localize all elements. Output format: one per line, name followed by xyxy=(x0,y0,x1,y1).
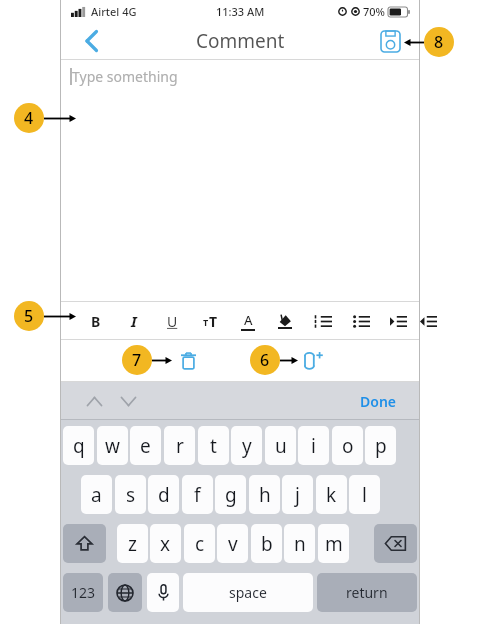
button[interactable]: Text size xyxy=(195,306,225,336)
button[interactable]: Attach file xyxy=(298,345,330,377)
staticText: n xyxy=(294,531,306,557)
staticText: g xyxy=(225,482,237,508)
staticText: q xyxy=(73,433,85,459)
staticText: j xyxy=(295,482,300,508)
button[interactable]: v xyxy=(217,524,248,563)
button[interactable]: b xyxy=(251,524,282,563)
button[interactable]: c xyxy=(184,524,215,563)
staticText: U xyxy=(167,312,178,331)
staticText: space xyxy=(229,583,267,602)
staticText: u xyxy=(275,433,287,459)
button[interactable]: y xyxy=(231,426,262,465)
button[interactable]: e xyxy=(130,426,161,465)
button[interactable]: Type something xyxy=(61,60,419,302)
button[interactable]: Numbers xyxy=(63,573,103,612)
staticText: y xyxy=(242,433,252,459)
staticText: v xyxy=(228,531,238,557)
button[interactable]: Back xyxy=(75,24,109,58)
staticText: r xyxy=(176,433,184,459)
staticText: o xyxy=(342,433,354,459)
staticText: h xyxy=(259,482,271,508)
button[interactable]: Backspace xyxy=(374,524,417,563)
button[interactable]: Delete xyxy=(172,345,204,377)
staticText: w xyxy=(105,433,120,459)
button[interactable]: Shift xyxy=(63,524,106,563)
button[interactable]: Text color xyxy=(233,306,263,336)
staticText: I xyxy=(131,311,137,331)
staticText: Done xyxy=(360,392,397,411)
staticText: T xyxy=(209,312,218,331)
button[interactable]: i xyxy=(298,426,329,465)
button[interactable]: l xyxy=(349,475,380,514)
button[interactable]: Previous field xyxy=(79,386,109,416)
staticText: Airtel 4G xyxy=(91,4,137,19)
button[interactable]: space xyxy=(183,573,313,612)
button[interactable]: t xyxy=(198,426,229,465)
button[interactable]: x xyxy=(150,524,181,563)
button[interactable]: g xyxy=(215,475,246,514)
staticText: 6 xyxy=(260,349,270,371)
button[interactable]: Decrease indent xyxy=(413,306,443,336)
button[interactable]: B xyxy=(81,306,111,336)
staticText: Comment xyxy=(196,28,285,54)
staticText: A xyxy=(244,311,253,329)
staticText: p xyxy=(375,433,387,459)
button[interactable]: w xyxy=(97,426,128,465)
staticText: 5 xyxy=(24,305,34,327)
staticText: Type something xyxy=(72,67,178,86)
button[interactable]: m xyxy=(318,524,349,563)
staticText: 7 xyxy=(132,349,142,371)
button[interactable]: n xyxy=(284,524,315,563)
button[interactable]: o xyxy=(332,426,363,465)
staticText: 8 xyxy=(434,31,444,53)
button[interactable]: Change keyboard xyxy=(108,573,142,612)
button[interactable]: I xyxy=(119,306,149,336)
staticText: return xyxy=(346,583,388,602)
button[interactable]: Save xyxy=(375,26,405,56)
button[interactable]: j xyxy=(282,475,313,514)
staticText: e xyxy=(140,433,151,459)
button[interactable]: z xyxy=(117,524,148,563)
button[interactable]: a xyxy=(81,475,112,514)
button[interactable]: k xyxy=(316,475,347,514)
button[interactable]: Done xyxy=(354,386,403,417)
staticText: 123 xyxy=(71,583,96,602)
staticText: 4 xyxy=(24,107,34,129)
staticText: k xyxy=(326,482,337,508)
button[interactable]: f xyxy=(182,475,213,514)
staticText: i xyxy=(311,433,316,459)
button[interactable]: r xyxy=(164,426,195,465)
staticText: c xyxy=(195,531,205,557)
button[interactable]: q xyxy=(63,426,94,465)
staticText: l xyxy=(362,482,367,508)
staticText: t xyxy=(210,433,217,459)
staticText: T xyxy=(203,316,209,328)
button[interactable]: return xyxy=(317,573,417,612)
button[interactable]: p xyxy=(365,426,396,465)
staticText: f xyxy=(194,482,201,508)
button[interactable]: Dictate xyxy=(147,573,179,612)
button[interactable]: U xyxy=(157,306,187,336)
button[interactable]: u xyxy=(265,426,296,465)
staticText: d xyxy=(158,482,170,508)
button[interactable]: Numbered list xyxy=(308,306,338,336)
staticText: B xyxy=(91,312,101,331)
staticText: a xyxy=(91,482,102,508)
staticText: s xyxy=(126,482,136,508)
staticText: x xyxy=(160,531,171,557)
button[interactable]: Increase indent xyxy=(383,306,413,336)
button[interactable]: h xyxy=(249,475,280,514)
staticText: b xyxy=(261,531,273,557)
button[interactable]: s xyxy=(115,475,146,514)
button[interactable]: d xyxy=(148,475,179,514)
button[interactable]: Next field xyxy=(113,386,143,416)
staticText: z xyxy=(128,531,137,557)
button[interactable]: Highlight color xyxy=(270,306,300,336)
staticText: 70% xyxy=(363,4,385,19)
staticText: 11:33 AM xyxy=(216,4,265,19)
button[interactable]: Bulleted list xyxy=(346,306,376,336)
staticText: m xyxy=(325,531,343,557)
